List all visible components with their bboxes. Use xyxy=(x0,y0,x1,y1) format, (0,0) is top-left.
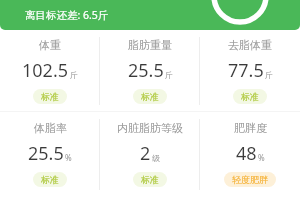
button[interactable]: 脂肪重量 xyxy=(100,30,200,111)
button[interactable]: 肥胖度 xyxy=(200,112,300,196)
button[interactable]: 标准 xyxy=(33,89,67,104)
staticText: 肥胖度 xyxy=(234,121,267,135)
staticText: 去脂体重 xyxy=(228,38,272,52)
staticText: 脂肪重量 xyxy=(128,38,172,52)
button[interactable]: 轻度肥胖 xyxy=(224,172,276,187)
button[interactable]: 标准 xyxy=(33,172,67,187)
staticText: % xyxy=(258,152,265,163)
staticText: 25.5 xyxy=(128,58,164,83)
button[interactable]: 体重 xyxy=(0,30,100,111)
button[interactable]: 内脏脂肪等级 xyxy=(100,112,200,196)
button[interactable]: 标准 xyxy=(233,89,267,104)
staticText: % xyxy=(65,152,72,163)
staticText: 内脏脂肪等级 xyxy=(117,121,183,135)
staticText: 标准 xyxy=(41,91,59,102)
button[interactable]: 去脂体重 xyxy=(200,30,300,111)
staticText: 标准 xyxy=(41,174,59,185)
staticText: 斤 xyxy=(165,70,173,80)
staticText: 级 xyxy=(152,153,160,163)
button[interactable]: 标准 xyxy=(133,89,167,104)
staticText: 斤 xyxy=(70,70,78,80)
staticText: 2 xyxy=(140,141,151,166)
staticText: 体重 xyxy=(39,38,61,52)
staticText: 25.5 xyxy=(28,141,64,166)
staticText: 轻度肥胖 xyxy=(232,174,268,185)
staticText: 102.5 xyxy=(22,58,69,83)
staticText: 体脂率 xyxy=(34,121,67,135)
button[interactable]: 标准 xyxy=(133,172,167,187)
staticText: 标准 xyxy=(141,91,159,102)
button[interactable]: 体脂率 xyxy=(0,112,100,196)
staticText: 标准 xyxy=(141,174,159,185)
staticText: 离目标还差: 6.5斤 xyxy=(25,8,109,22)
staticText: 48 xyxy=(236,141,257,166)
staticText: 标准 xyxy=(241,91,259,102)
staticText: 77.5 xyxy=(228,58,264,83)
staticText: 斤 xyxy=(265,70,273,80)
